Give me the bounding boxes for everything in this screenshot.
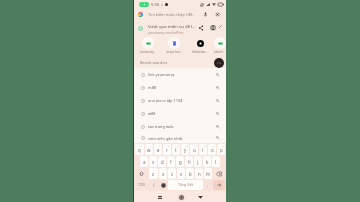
button[interactable]: thefacebo... xyxy=(187,36,213,54)
button[interactable]: l xyxy=(212,156,220,167)
staticText: a xyxy=(143,159,146,165)
button[interactable]: j xyxy=(194,156,202,167)
button[interactable]: b xyxy=(186,168,194,179)
button[interactable]: link yeumoney xyxy=(134,68,226,81)
button[interactable]: Go xyxy=(213,180,225,190)
staticText: 6 xyxy=(186,144,188,147)
button[interactable]: placeh... xyxy=(213,36,226,54)
button[interactable]: u xyxy=(190,144,198,155)
staticText: link yeumoney xyxy=(148,72,175,77)
button[interactable]: Tiếng Việt xyxy=(168,180,203,190)
button[interactable]: Use this search xyxy=(214,84,222,92)
button[interactable]: d xyxy=(158,156,166,167)
button[interactable]: Edit xyxy=(219,23,222,33)
button[interactable]: Use this search xyxy=(214,134,222,142)
button[interactable]: Home xyxy=(176,192,186,202)
staticText: e xyxy=(157,147,160,153)
staticText: ?123 xyxy=(138,183,145,187)
button[interactable]: Shift xyxy=(135,168,148,179)
button[interactable]: yeumoney... xyxy=(135,36,161,54)
staticText: 5:06 xyxy=(151,2,160,8)
button[interactable]: q xyxy=(135,144,144,155)
staticText: m xyxy=(206,171,211,177)
staticText: cơm niêu gần nhất xyxy=(148,136,183,141)
button[interactable]: Vượt qua miễn vụ đề l... xyxy=(134,20,226,36)
button[interactable]: f xyxy=(167,156,175,167)
staticText: Tiếng Việt xyxy=(178,183,193,187)
button[interactable]: a xyxy=(140,156,148,167)
button[interactable]: vietjsc.fun/... xyxy=(161,36,187,54)
button[interactable]: Hide keyboard xyxy=(195,192,205,202)
staticText: k xyxy=(206,159,209,165)
staticText: 8 xyxy=(204,144,206,147)
button[interactable]: i xyxy=(199,144,207,155)
staticText: vietjsc.fun/... xyxy=(166,50,183,54)
button[interactable]: / xyxy=(149,180,158,190)
staticText: 2 xyxy=(150,144,152,147)
staticText: Vượt qua miễn vụ đề l... xyxy=(148,23,196,29)
button[interactable]: w88 xyxy=(134,107,226,120)
staticText: b xyxy=(189,171,192,177)
button[interactable]: t xyxy=(172,144,180,155)
button[interactable]: h xyxy=(185,156,193,167)
button[interactable]: y xyxy=(181,144,189,155)
staticText: h xyxy=(188,159,191,165)
button[interactable]: Tìm kiếm hoặc nhập URL xyxy=(134,9,226,20)
button[interactable]: Use this search xyxy=(214,97,222,105)
button[interactable]: p xyxy=(217,144,225,155)
staticText: u xyxy=(193,147,196,153)
button[interactable]: n xyxy=(195,168,203,179)
staticText: 0 xyxy=(222,144,224,147)
button[interactable]: m xyxy=(204,168,212,179)
button[interactable]: s xyxy=(149,156,157,167)
button[interactable]: e xyxy=(154,144,162,155)
staticText: o xyxy=(211,147,214,153)
button[interactable]: Use this search xyxy=(214,123,222,131)
button[interactable]: v xyxy=(177,168,185,179)
button[interactable]: Backspace xyxy=(213,168,225,179)
staticText: yeumoney.com/xzfFmt xyxy=(148,30,184,34)
button[interactable]: c xyxy=(168,168,176,179)
button[interactable]: w xyxy=(145,144,153,155)
staticText: tạo trang web xyxy=(148,124,174,129)
button[interactable]: g xyxy=(176,156,184,167)
button[interactable]: . xyxy=(204,180,212,190)
button[interactable]: o xyxy=(208,144,216,155)
button[interactable]: ?123 xyxy=(135,180,148,190)
staticText: p xyxy=(220,147,223,153)
button[interactable]: Use this search xyxy=(214,110,222,118)
staticText: v xyxy=(180,171,183,177)
button[interactable]: k xyxy=(203,156,211,167)
staticText: r xyxy=(166,147,168,153)
staticText: 3 xyxy=(159,144,161,147)
button[interactable]: Profile xyxy=(214,58,224,68)
staticText: 5 xyxy=(177,144,179,147)
staticText: Recent searches xyxy=(140,60,168,65)
button[interactable]: Share xyxy=(196,23,206,33)
staticText: i xyxy=(202,147,204,153)
button[interactable]: Change language xyxy=(159,180,167,190)
button[interactable]: Voice search xyxy=(201,10,210,19)
button[interactable]: r xyxy=(163,144,171,155)
button[interactable]: Use this search xyxy=(214,71,222,79)
staticText: w xyxy=(147,147,151,153)
staticText: 1 xyxy=(141,144,143,147)
staticText: x xyxy=(162,171,165,177)
button[interactable]: Recent apps xyxy=(155,192,165,202)
button[interactable]: Google Lens xyxy=(213,10,222,19)
staticText: d xyxy=(161,159,164,165)
button[interactable]: z xyxy=(149,168,158,179)
button[interactable]: one piece tập 1104 xyxy=(134,94,226,107)
staticText: . xyxy=(207,182,209,188)
staticText: thefacebo... xyxy=(192,50,208,54)
button[interactable]: m88 xyxy=(134,81,226,94)
staticText: Tìm kiếm hoặc nhập URL xyxy=(148,12,194,17)
button[interactable]: cơm niêu gần nhất xyxy=(134,133,226,143)
button[interactable]: Copy xyxy=(208,23,218,33)
button[interactable]: x xyxy=(159,168,167,179)
staticText: 7 xyxy=(195,144,197,147)
staticText: y xyxy=(184,147,187,153)
staticText: 9 xyxy=(213,144,215,147)
button[interactable]: tạo trang web xyxy=(134,120,226,133)
staticText: z xyxy=(152,171,155,177)
